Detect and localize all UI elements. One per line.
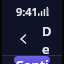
staticText: Details: [42, 22, 52, 56]
button[interactable]: Continue: [14, 56, 50, 64]
button[interactable]: Back: [12, 27, 36, 51]
staticText: Continue: [14, 56, 50, 64]
staticText: 9:41: [16, 4, 38, 19]
